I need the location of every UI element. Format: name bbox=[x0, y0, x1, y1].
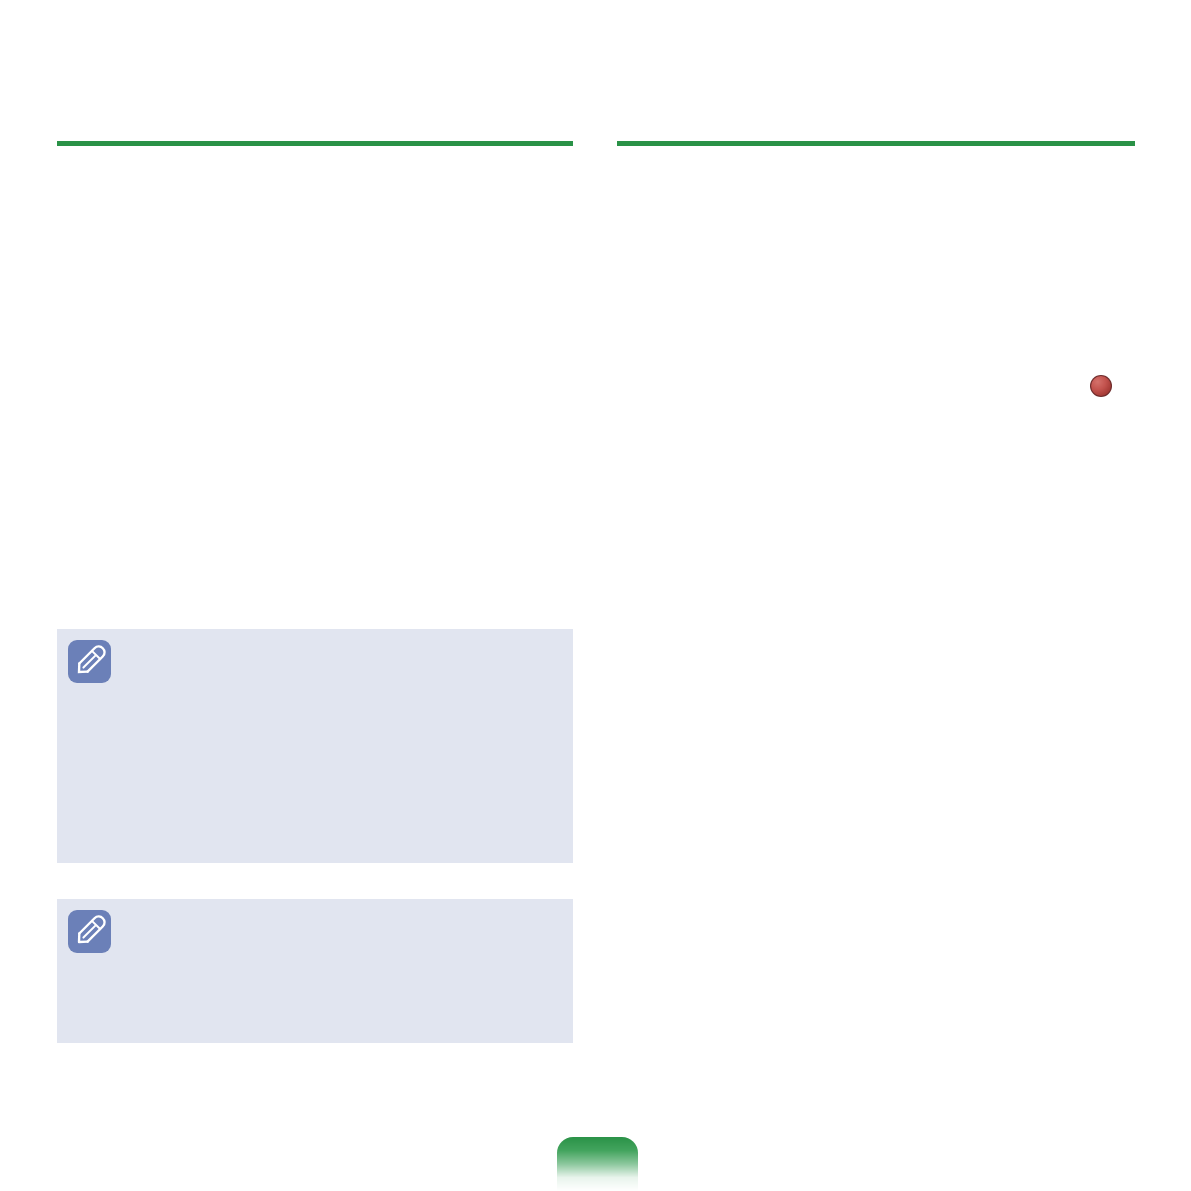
button[interactable]: Note bbox=[57, 629, 573, 863]
button[interactable]: Status indicator bbox=[1090, 375, 1112, 397]
button[interactable]: Page tab bbox=[557, 1137, 638, 1191]
button[interactable]: Note bbox=[57, 899, 573, 1043]
